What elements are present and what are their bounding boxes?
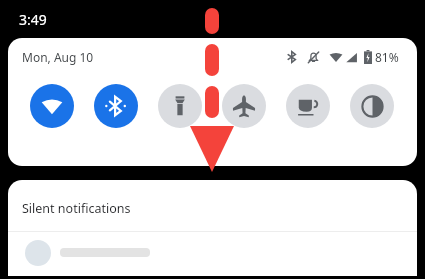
staticText: 81%: [375, 49, 399, 65]
staticText: Silent notifications: [22, 200, 131, 217]
button[interactable]: Quick setting: [94, 84, 138, 128]
staticText: Mon, Aug 10: [22, 49, 94, 65]
button[interactable]: Quick setting: [30, 84, 74, 128]
button[interactable]: Quick setting: [286, 84, 330, 128]
button[interactable]: Quick setting: [350, 84, 394, 128]
button[interactable]: Quick setting: [158, 84, 202, 128]
button[interactable]: Quick setting: [222, 84, 266, 128]
staticText: 3:49: [19, 10, 47, 29]
